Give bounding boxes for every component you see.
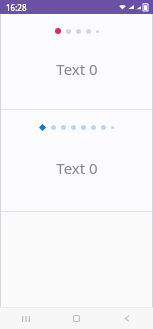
button[interactable]: Recent apps (0, 308, 51, 329)
button[interactable]: Page indicator (39, 122, 114, 132)
staticText: Text 0 (56, 59, 98, 79)
button[interactable]: Page indicator (0, 110, 153, 211)
button[interactable]: Back (102, 308, 153, 329)
staticText: Text 0 (56, 158, 98, 178)
button[interactable]: Home (51, 308, 102, 329)
button[interactable]: Page indicator (0, 14, 153, 109)
button[interactable]: Page indicator (55, 26, 99, 36)
staticText: 16:28 (6, 2, 27, 13)
